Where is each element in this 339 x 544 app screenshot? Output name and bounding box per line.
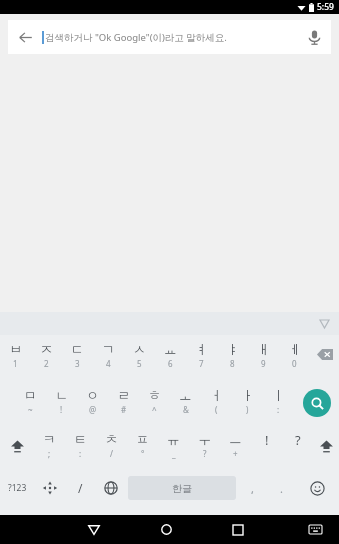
staticText: ㅁ [24, 387, 37, 403]
button[interactable]: Home [144, 515, 188, 544]
staticText: 8 [230, 358, 235, 369]
staticText: ㅅ [133, 341, 146, 357]
staticText: ㅕ [195, 341, 208, 357]
staticText: ; [48, 448, 51, 459]
button[interactable]: Back [72, 515, 116, 544]
staticText: + [233, 448, 238, 459]
staticText: @ [89, 404, 97, 415]
staticText: ㅑ [226, 341, 239, 357]
staticText: 0 [292, 358, 297, 369]
staticText: ) [246, 404, 249, 415]
staticText: 2 [44, 358, 49, 369]
staticText: ㅋ [43, 431, 56, 447]
staticText: ㅎ [148, 387, 161, 403]
button[interactable]: Show more suggestions [309, 312, 339, 335]
button[interactable]: ㅅ [124, 335, 155, 381]
button[interactable]: Back [8, 20, 331, 54]
staticText: , [251, 481, 254, 496]
button[interactable]: Switch keyboard [299, 515, 331, 544]
button[interactable]: Recent apps [216, 515, 260, 544]
button[interactable]: ㅇ [77, 381, 108, 425]
staticText: ㅜ [198, 431, 211, 447]
button[interactable]: ㅈ [31, 335, 62, 381]
staticText: ㅏ [241, 387, 254, 403]
button[interactable]: Shift [313, 425, 339, 468]
button[interactable]: ㄷ [62, 335, 93, 381]
button[interactable]: ㅣ [263, 381, 294, 425]
staticText: 한글 [172, 482, 192, 495]
button[interactable]: ㅛ [155, 335, 186, 381]
staticText: # [121, 404, 127, 415]
staticText: _ [172, 448, 176, 459]
staticText: ㅗ [179, 387, 192, 403]
button[interactable]: 한글 [128, 476, 236, 500]
staticText: ㅣ [272, 387, 285, 403]
staticText: ㅡ [229, 431, 242, 447]
staticText: ㅂ [9, 341, 22, 357]
button[interactable]: Shift [0, 425, 34, 468]
staticText: 5 [137, 358, 142, 369]
button[interactable]: ㅂ [0, 335, 31, 381]
button[interactable]: ㅌ [65, 425, 96, 468]
button[interactable]: ㅠ [158, 425, 189, 468]
button[interactable]: ㅍ [127, 425, 158, 468]
staticText: ㄹ [117, 387, 130, 403]
staticText: ㅔ [288, 341, 301, 357]
button[interactable]: ㅏ [232, 381, 263, 425]
staticText: 검색하거나 "Ok Google"(이)라고 말하세요. [45, 31, 227, 44]
staticText: ㄴ [55, 387, 68, 403]
button[interactable]: / [65, 468, 95, 508]
staticText: 6 [168, 358, 173, 369]
staticText: ㄱ [102, 341, 115, 357]
staticText: ㄷ [71, 341, 84, 357]
staticText: 1 [13, 358, 18, 369]
staticText: ㅇ [86, 387, 99, 403]
staticText: ㅓ [210, 387, 223, 403]
button[interactable]: ! [251, 425, 282, 468]
button[interactable]: Search [294, 381, 339, 425]
button[interactable]: Emoji [296, 468, 339, 508]
staticText: : [277, 404, 280, 415]
staticText: ㅛ [164, 341, 177, 357]
staticText: ㅌ [74, 431, 87, 447]
staticText: : [79, 448, 82, 459]
staticText: / [110, 448, 113, 459]
button[interactable]: Arrow keys [34, 468, 65, 508]
button[interactable]: ㅐ [248, 335, 279, 381]
button[interactable]: ㄱ [93, 335, 124, 381]
staticText: ° [141, 448, 145, 459]
staticText: 9 [261, 358, 266, 369]
staticText: ! [60, 404, 63, 415]
button[interactable]: ㅓ [201, 381, 232, 425]
staticText: 5:59 [317, 1, 334, 13]
button[interactable]: , [238, 468, 267, 508]
button[interactable]: ㅊ [96, 425, 127, 468]
button[interactable]: ㅔ [279, 335, 310, 381]
staticText: ㅍ [136, 431, 149, 447]
button[interactable]: ? [282, 425, 313, 468]
button[interactable]: Backspace [310, 335, 339, 381]
staticText: ! [265, 431, 269, 449]
staticText: ~ [28, 404, 33, 415]
button[interactable]: ㅜ [189, 425, 220, 468]
button[interactable]: ㅡ [220, 425, 251, 468]
button[interactable]: ㅑ [217, 335, 248, 381]
staticText: / [78, 480, 83, 496]
button[interactable]: Change language [95, 468, 126, 508]
button[interactable]: ㅗ [170, 381, 201, 425]
staticText: ( [215, 404, 218, 415]
button[interactable]: ㄴ [46, 381, 77, 425]
staticText: ?123 [8, 482, 27, 494]
button[interactable]: ㅁ [15, 381, 46, 425]
button[interactable]: Back [8, 20, 42, 54]
button[interactable]: ㄹ [108, 381, 139, 425]
button[interactable]: Voice search [297, 20, 331, 54]
staticText: . [280, 481, 283, 496]
button[interactable]: ㅕ [186, 335, 217, 381]
button[interactable]: ㅋ [34, 425, 65, 468]
staticText: 7 [199, 358, 204, 369]
staticText: & [183, 404, 189, 415]
button[interactable]: ?123 [0, 468, 34, 508]
button[interactable]: ㅎ [139, 381, 170, 425]
